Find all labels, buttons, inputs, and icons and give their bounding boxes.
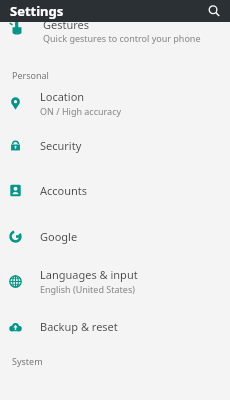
staticText: Security bbox=[40, 138, 82, 153]
staticText: English (United States) bbox=[40, 283, 135, 295]
staticText: Accounts bbox=[40, 183, 88, 198]
staticText: Backup & reset bbox=[40, 319, 118, 334]
button[interactable]: Accounts bbox=[0, 167, 230, 213]
button[interactable]: Google bbox=[0, 213, 230, 259]
staticText: Languages & input bbox=[40, 267, 138, 282]
button[interactable]: Backup and reset bbox=[0, 303, 230, 349]
button[interactable]: Gestures bbox=[0, 22, 230, 50]
staticText: System bbox=[12, 355, 43, 367]
button[interactable]: Languages and input bbox=[0, 259, 230, 303]
button[interactable]: Search bbox=[205, 2, 223, 20]
button[interactable]: Security bbox=[0, 123, 230, 167]
staticText: Gestures bbox=[43, 22, 90, 32]
staticText: Location bbox=[40, 89, 85, 104]
button[interactable]: Location bbox=[0, 83, 230, 123]
staticText: Personal bbox=[12, 69, 49, 81]
staticText: ON / High accuracy bbox=[40, 105, 122, 117]
staticText: Settings bbox=[10, 2, 64, 20]
staticText: Quick gestures to control your phone bbox=[43, 32, 201, 44]
staticText: Google bbox=[40, 229, 78, 244]
